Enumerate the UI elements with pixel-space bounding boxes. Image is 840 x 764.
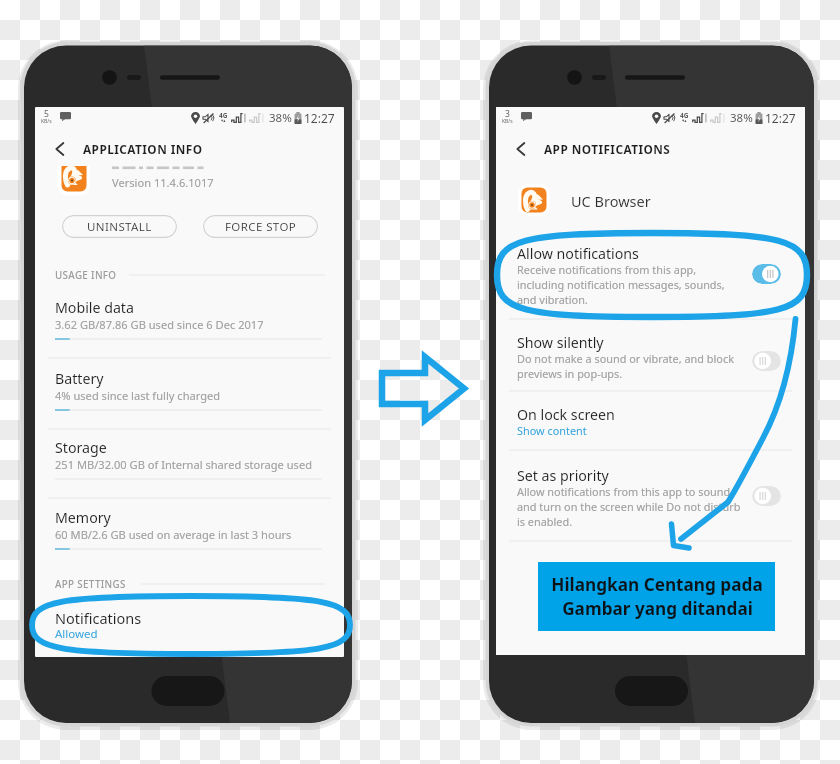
staticText: and turn on the screen while Do not dist…	[517, 499, 741, 514]
staticText: is enabled.	[517, 514, 573, 529]
staticText: Gambar yang ditandai	[562, 597, 753, 620]
button[interactable]: Back	[503, 131, 539, 167]
staticText: 251 MB/32.00 GB of Internal shared stora…	[55, 457, 312, 472]
button[interactable]: UNINSTALL	[62, 215, 177, 238]
staticText: Mobile data	[55, 298, 134, 317]
staticText: On lock screen	[517, 405, 615, 424]
staticText: FORCE STOP	[225, 219, 297, 235]
button[interactable]: Back	[42, 131, 78, 167]
staticText: Allow notifications	[517, 244, 639, 263]
button[interactable]: Notifications	[35, 601, 344, 657]
staticText: UNINSTALL	[87, 219, 152, 235]
staticText: KB/s	[41, 118, 52, 125]
staticText: 4G	[680, 111, 689, 120]
staticText: Allow notifications from this app to sou…	[517, 484, 731, 499]
staticText: ▾▴	[221, 118, 226, 123]
button[interactable]: Toggle off	[752, 486, 781, 506]
staticText: Memory	[55, 508, 111, 527]
staticText: UC Browser	[571, 191, 651, 211]
button[interactable]: Set as priority	[496, 466, 805, 542]
staticText: 3	[505, 108, 510, 120]
staticText: KB/s	[502, 118, 513, 125]
button[interactable]: Allow notifications	[496, 244, 805, 320]
staticText: Storage	[55, 438, 107, 457]
staticText: Version 11.4.6.1017	[112, 175, 214, 190]
button[interactable]: Storage	[35, 429, 344, 499]
staticText: 4G	[219, 111, 228, 120]
button[interactable]: Battery	[35, 360, 344, 430]
staticText: 38%	[269, 110, 292, 126]
staticText: USAGE INFO	[55, 269, 117, 282]
staticText: 12:27	[304, 110, 335, 126]
staticText: Set as priority	[517, 466, 609, 485]
staticText: previews in pop-ups.	[517, 366, 623, 381]
staticText: Do not make a sound or vibrate, and bloc…	[517, 351, 734, 366]
button[interactable]: On lock screen	[496, 405, 805, 451]
staticText: 3.62 GB/87.86 GB used since 6 Dec 2017	[55, 317, 264, 332]
staticText: 60 MB/2.6 GB used on average in last 3 h…	[55, 527, 292, 542]
button[interactable]: Memory	[35, 499, 344, 569]
staticText: Show content	[517, 423, 587, 438]
staticText: APP NOTIFICATIONS	[544, 141, 671, 157]
button[interactable]: Mobile data	[35, 289, 344, 359]
staticText: APP SETTINGS	[55, 578, 126, 591]
staticText: ▾▴	[682, 118, 687, 123]
staticText: Notifications	[55, 608, 142, 628]
staticText: 12:27	[765, 110, 796, 126]
staticText: including notification messages, sounds,	[517, 277, 725, 292]
staticText: Hilangkan Centang pada	[551, 573, 763, 596]
button[interactable]: Show silently	[496, 333, 805, 392]
staticText: APPLICATION INFO	[83, 141, 203, 157]
staticText: Receive notifications from this app,	[517, 262, 697, 277]
button[interactable]: Hilangkan Centang pada	[538, 562, 775, 631]
button[interactable]: Toggle on	[752, 264, 781, 284]
staticText: 4% used since last fully charged	[55, 388, 221, 403]
staticText: Battery	[55, 369, 104, 388]
staticText: Allowed	[55, 626, 98, 642]
staticText: 5	[44, 108, 49, 120]
button[interactable]: Toggle off	[752, 351, 781, 371]
staticText: Show silently	[517, 333, 604, 352]
staticText: and vibration.	[517, 292, 588, 307]
staticText: 38%	[730, 110, 753, 126]
button[interactable]: FORCE STOP	[203, 215, 318, 238]
